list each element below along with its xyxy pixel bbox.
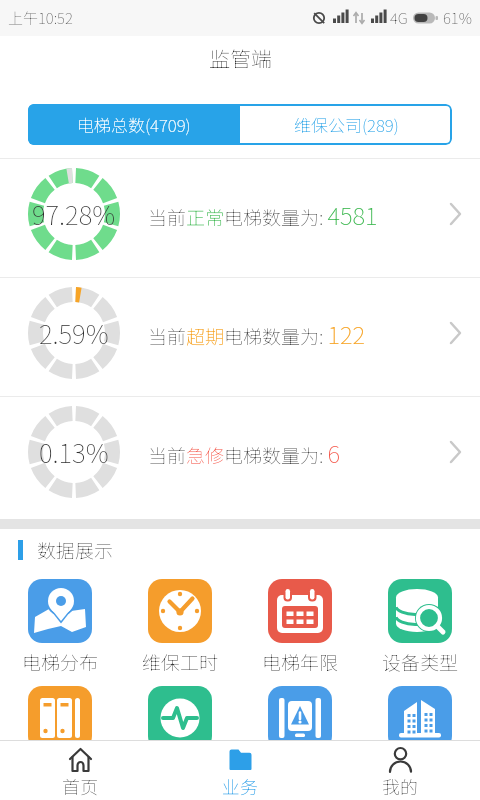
button[interactable] <box>120 686 240 750</box>
staticText: 我的 <box>382 773 418 799</box>
staticText: 维保公司(289) <box>294 112 399 137</box>
button[interactable]: 97.28% <box>0 159 480 277</box>
button[interactable]: 0.13% <box>0 397 480 515</box>
staticText: 设备类型 <box>382 648 459 676</box>
staticText: 当前超期电梯数量为: 122 <box>148 316 366 351</box>
staticText: 电梯总数(4709) <box>77 112 191 137</box>
button[interactable] <box>0 686 120 750</box>
staticText: 维保工时 <box>142 648 219 676</box>
button[interactable]: 2.59% <box>0 278 480 396</box>
staticText: 当前正常电梯数量为: 4581 <box>148 197 378 232</box>
button[interactable]: 设备类型 <box>360 579 480 676</box>
staticText: 电梯分布 <box>22 648 99 676</box>
button[interactable]: 电梯分布 <box>0 579 120 676</box>
button[interactable]: 维保工时 <box>120 579 240 676</box>
button[interactable]: 首页 <box>0 741 160 800</box>
button[interactable]: 我的 <box>320 741 480 800</box>
button[interactable]: 电梯年限 <box>240 579 360 676</box>
button[interactable] <box>360 686 480 750</box>
staticText: 0.13% <box>39 433 109 471</box>
staticText: 61% <box>443 7 472 29</box>
staticText: 首页 <box>62 773 98 799</box>
button[interactable]: 业务 <box>160 741 320 800</box>
staticText: 监管端 <box>209 43 272 73</box>
staticText: 2.59% <box>39 314 109 352</box>
staticText: 当前急修电梯数量为: 6 <box>148 435 341 470</box>
staticText: 4G <box>390 7 408 29</box>
staticText: 数据展示 <box>37 536 114 564</box>
staticText: 97.28% <box>32 195 116 233</box>
button[interactable] <box>240 686 360 750</box>
staticText: 业务 <box>222 773 258 799</box>
staticText: 电梯年限 <box>262 648 339 676</box>
button[interactable]: 维保公司(289) <box>240 104 452 145</box>
staticText: 上午10:52 <box>8 7 73 29</box>
button[interactable]: 电梯总数(4709) <box>28 104 240 145</box>
